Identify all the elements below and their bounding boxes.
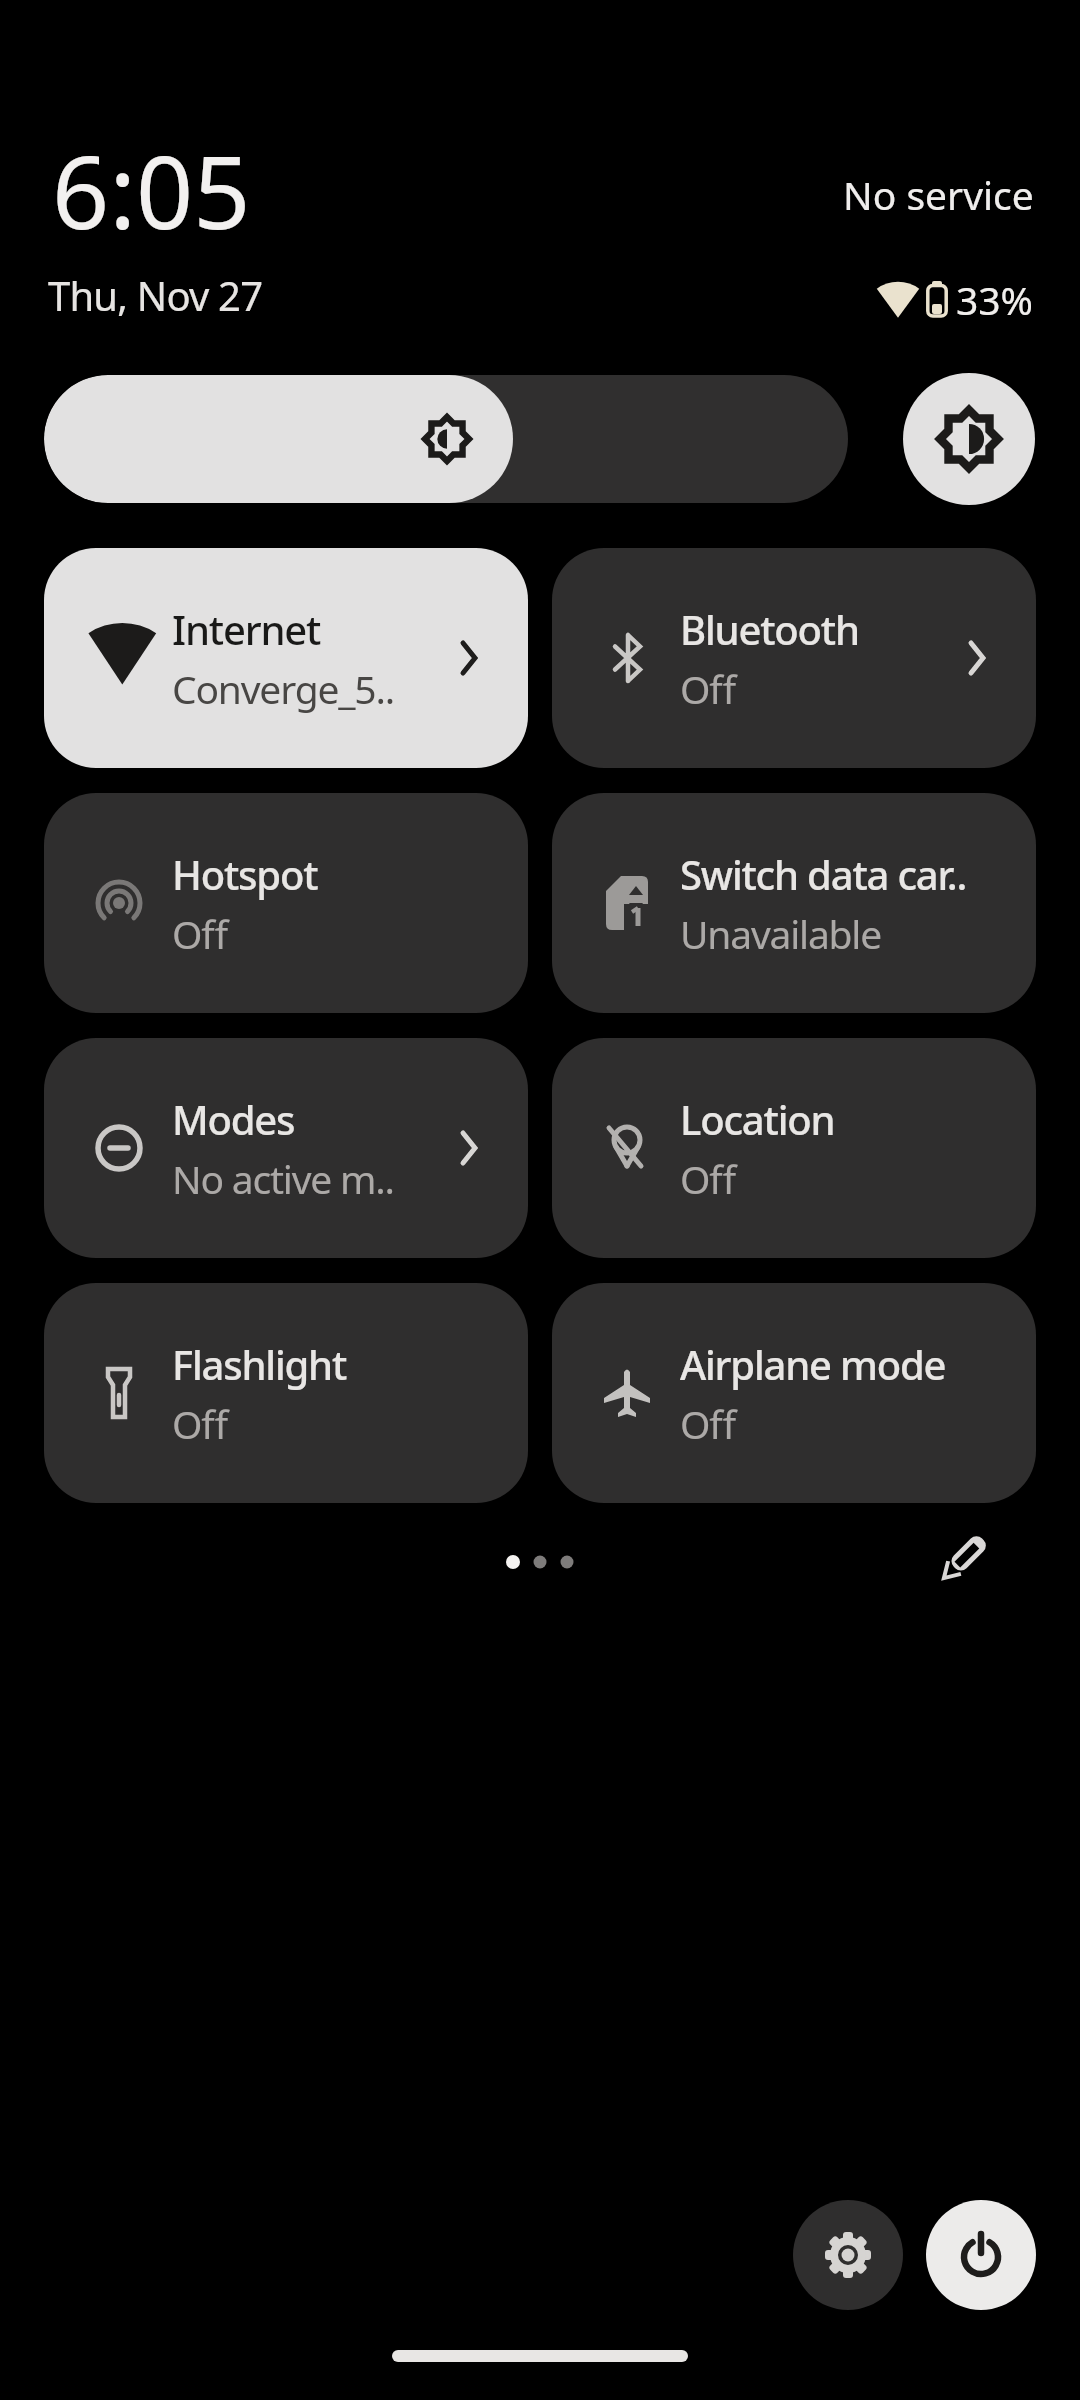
- staticText: Hotspot: [172, 847, 318, 901]
- button[interactable]: [793, 2200, 903, 2310]
- staticText: Thu, Nov 27: [48, 268, 263, 322]
- staticText: Converge_5..: [172, 662, 394, 715]
- staticText: Modes: [172, 1092, 295, 1146]
- button[interactable]: Bluetooth: [552, 548, 1036, 768]
- button[interactable]: Hotspot: [44, 793, 528, 1013]
- staticText: Switch data car..: [680, 847, 967, 901]
- button[interactable]: [44, 375, 848, 503]
- button[interactable]: [903, 373, 1035, 505]
- button[interactable]: Airplane mode: [552, 1283, 1036, 1503]
- button[interactable]: Flashlight: [44, 1283, 528, 1503]
- staticText: No active m..: [172, 1152, 394, 1205]
- button[interactable]: [938, 1534, 988, 1584]
- staticText: Off: [680, 1152, 735, 1205]
- staticText: Off: [172, 907, 227, 960]
- button[interactable]: Internet: [44, 548, 528, 768]
- staticText: Unavailable: [680, 907, 882, 960]
- staticText: 6:05: [52, 122, 251, 258]
- staticText: Bluetooth: [680, 602, 859, 656]
- staticText: Internet: [172, 602, 321, 656]
- staticText: Airplane mode: [680, 1337, 946, 1391]
- staticText: Off: [680, 662, 735, 715]
- staticText: 33%: [956, 273, 1034, 326]
- button[interactable]: Switch data car..: [552, 793, 1036, 1013]
- button[interactable]: [926, 2200, 1036, 2310]
- staticText: Location: [680, 1092, 835, 1146]
- button[interactable]: Modes: [44, 1038, 528, 1258]
- staticText: Off: [172, 1397, 227, 1450]
- staticText: No service: [843, 168, 1034, 221]
- staticText: Off: [680, 1397, 735, 1450]
- staticText: Flashlight: [172, 1337, 347, 1391]
- button[interactable]: Location: [552, 1038, 1036, 1258]
